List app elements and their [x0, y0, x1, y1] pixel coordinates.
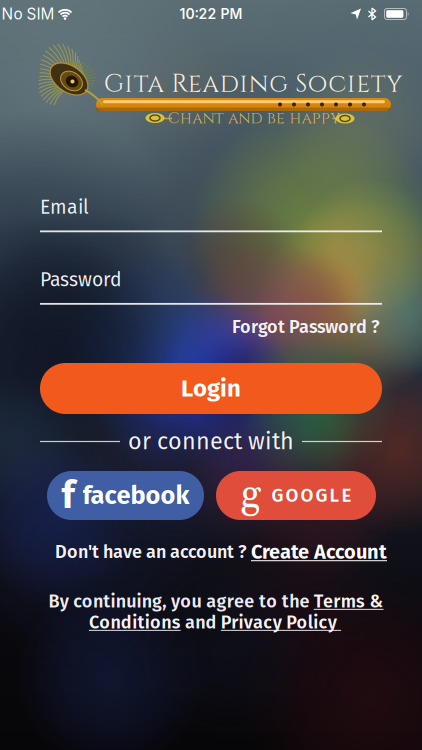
staticText: Email [40, 196, 89, 219]
staticText: Create Account [251, 540, 387, 564]
button[interactable]: Conditions [89, 612, 181, 633]
staticText: Don't have an account ? [55, 541, 251, 563]
button[interactable]: g [216, 471, 376, 520]
staticText: Forgot Password ? [232, 316, 380, 338]
staticText: f [61, 473, 74, 518]
staticText: facebook [82, 480, 189, 511]
staticText: Conditions [89, 612, 181, 633]
staticText: and [181, 612, 221, 633]
staticText: Terms & [314, 591, 383, 612]
staticText: No SIM [1, 5, 54, 23]
staticText: By continuing, you agree to the [48, 591, 314, 612]
staticText: or connect with [128, 427, 294, 455]
staticText: Privacy Policy [221, 612, 341, 633]
staticText: Login [181, 374, 241, 403]
button[interactable]: Forgot Password ? [232, 316, 380, 338]
staticText: g [240, 470, 260, 521]
button[interactable]: Create Account [251, 540, 387, 564]
staticText: Gita Reading Society [104, 67, 402, 101]
button[interactable]: f [47, 471, 204, 520]
staticText: 10:22 PM [179, 5, 242, 22]
staticText: Password [40, 268, 122, 291]
button[interactable]: Login [40, 363, 382, 414]
button[interactable]: Privacy Policy [221, 612, 341, 633]
button[interactable]: Email [40, 196, 382, 232]
staticText: GOOGLE [271, 484, 351, 507]
staticText: Chant and be happy [168, 108, 340, 129]
button[interactable]: Terms & [314, 591, 383, 612]
button[interactable]: Password [40, 268, 382, 305]
